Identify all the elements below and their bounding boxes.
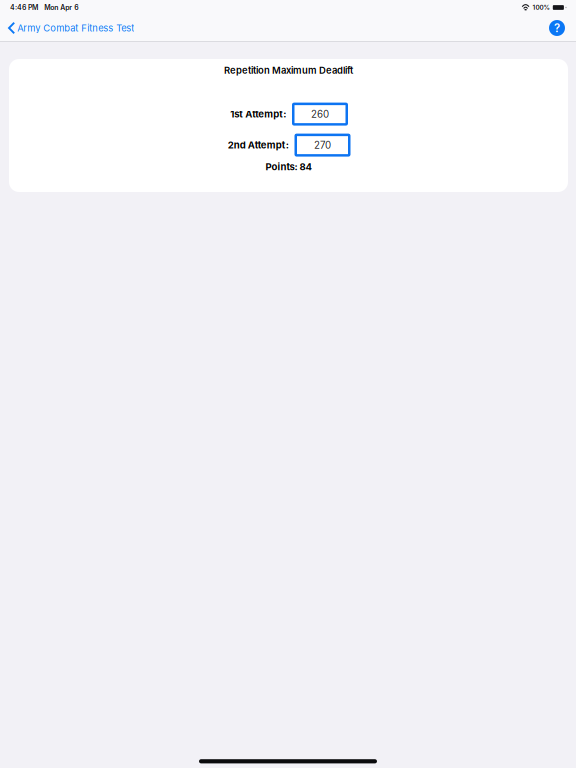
staticText: 260 [311, 108, 329, 120]
button[interactable]: 270 [296, 135, 349, 155]
button[interactable]: Help [542, 16, 576, 40]
staticText: ? [554, 21, 560, 35]
staticText: 100% [532, 4, 549, 11]
staticText: 270 [314, 139, 331, 151]
staticText: Points: 84 [265, 161, 311, 173]
button[interactable]: Army Combat Fitness Test [0, 18, 140, 38]
staticText: 2nd Attempt: [228, 139, 289, 151]
button[interactable]: 260 [293, 104, 347, 124]
staticText: Mon Apr 6 [44, 3, 78, 12]
staticText: Repetition Maximum Deadlift [224, 65, 353, 76]
staticText: 4:46 PM [10, 3, 38, 12]
staticText: Army Combat Fitness Test [17, 22, 134, 34]
staticText: 1st Attempt: [230, 108, 286, 120]
